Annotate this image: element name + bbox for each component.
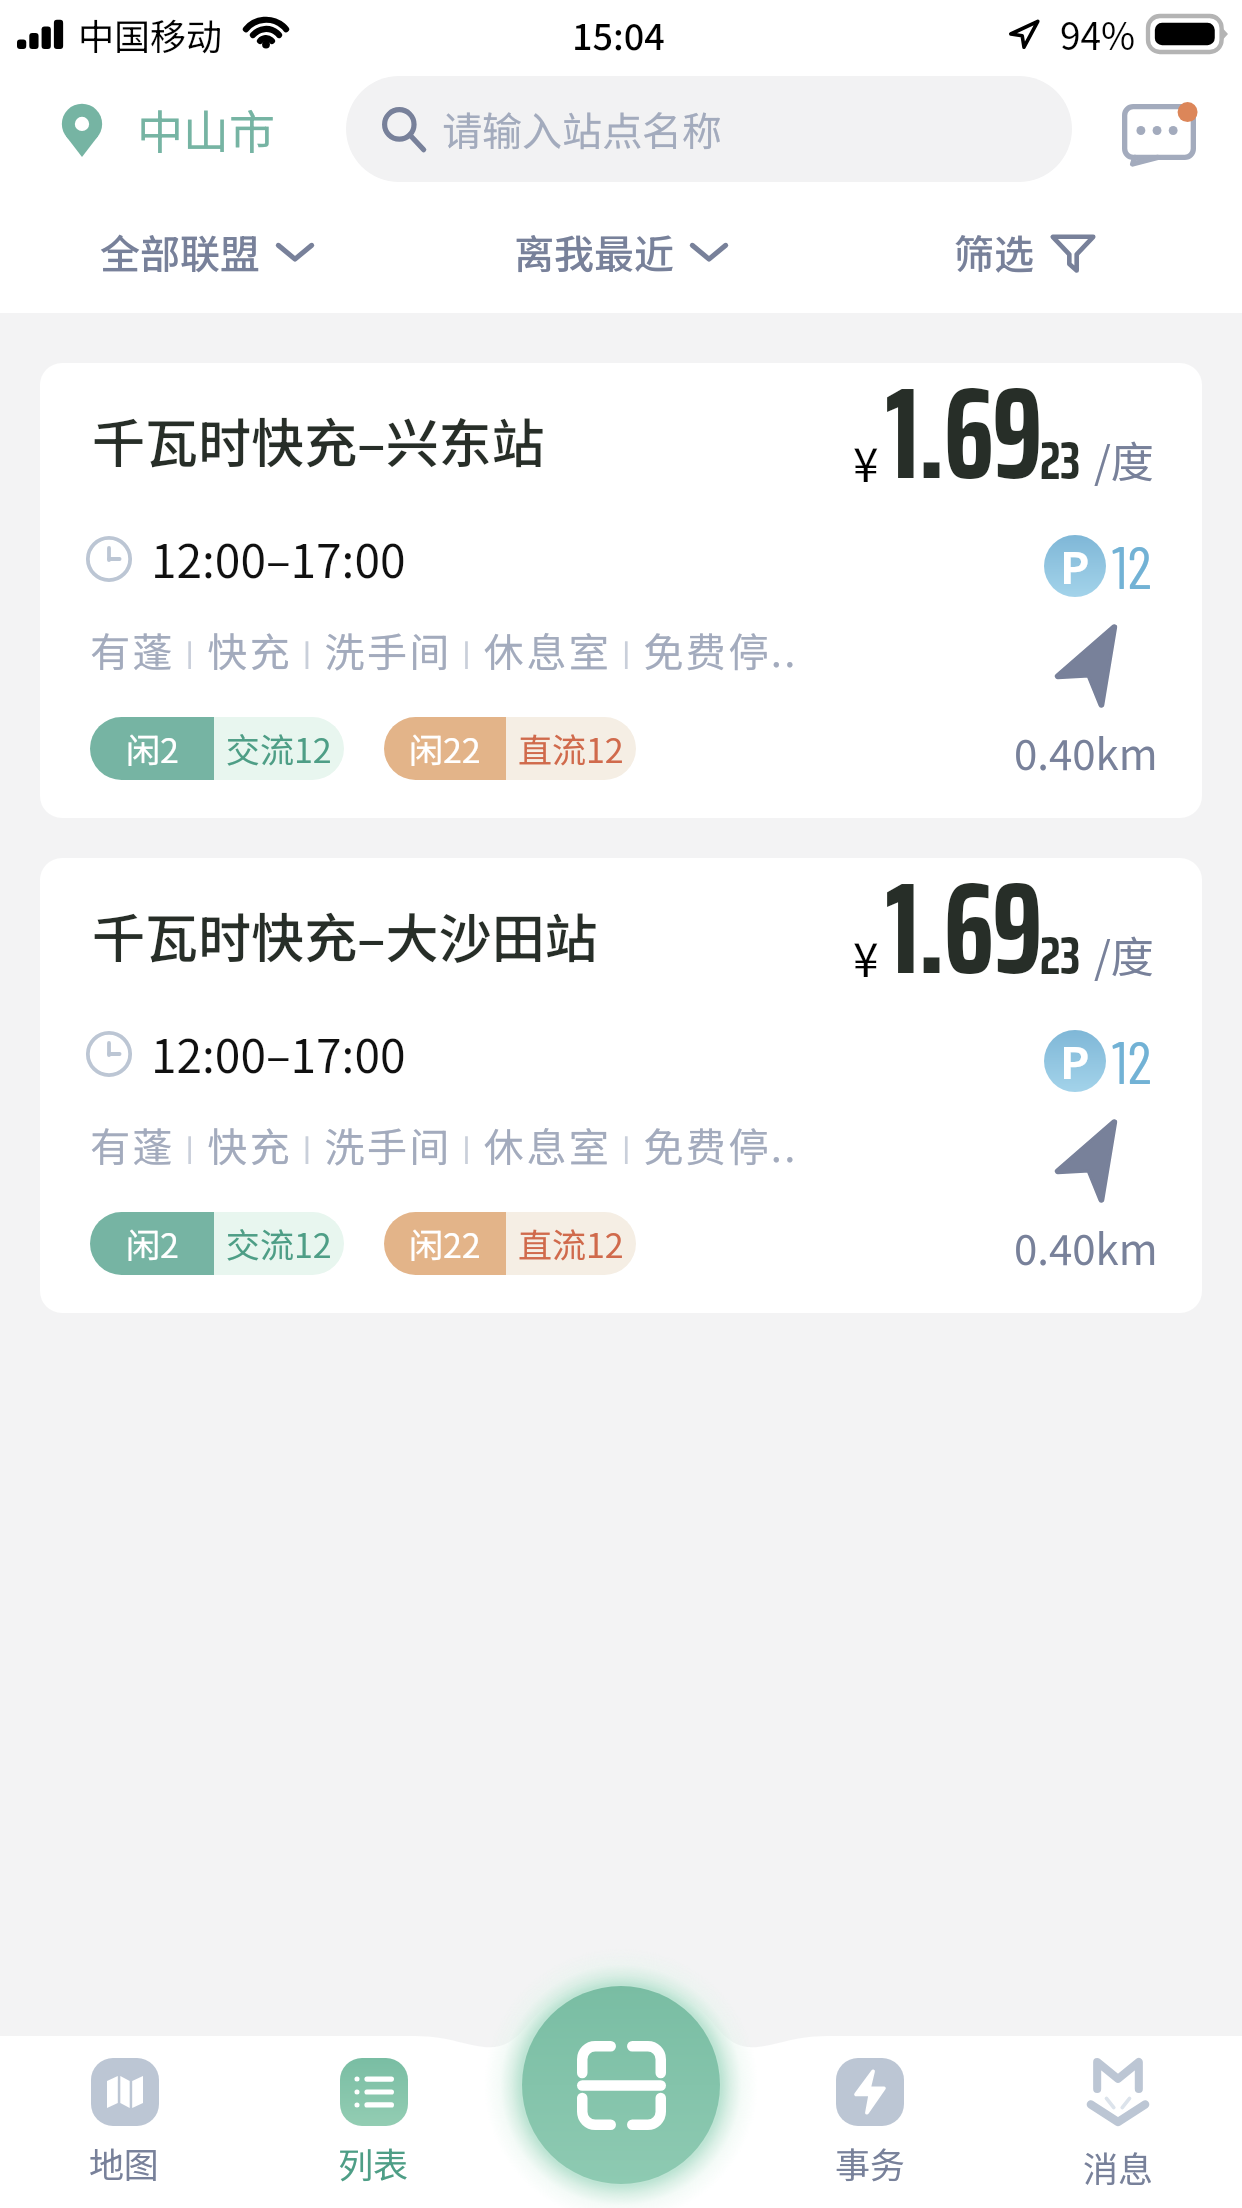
button[interactable]: Scan QR code xyxy=(522,1986,720,2184)
staticText: 交流12 xyxy=(226,1219,332,1268)
button[interactable]: 中山市 xyxy=(61,96,275,163)
staticText: 1.69 xyxy=(885,858,1041,1030)
staticText: 消息 xyxy=(1083,2141,1154,2192)
staticText: 1.69 xyxy=(885,363,1041,535)
staticText: /度 xyxy=(1094,923,1154,985)
staticText: 全部联盟 xyxy=(100,223,260,281)
staticText: 事务 xyxy=(835,2137,906,2188)
button[interactable]: Messages xyxy=(1114,89,1204,179)
staticText: 0.40km xyxy=(1014,721,1158,782)
button[interactable]: 筛选 xyxy=(828,190,1242,313)
staticText: 23 xyxy=(1040,418,1080,503)
staticText: 列表 xyxy=(338,2137,409,2188)
staticText: P xyxy=(1060,535,1090,595)
staticText: 12 xyxy=(1112,1024,1152,1096)
button[interactable]: 事务 xyxy=(746,2035,994,2208)
staticText: 直流12 xyxy=(518,1219,624,1268)
staticText: 有蓬丨快充丨洗手间丨休息室丨免费停.. xyxy=(90,1116,798,1174)
staticText: 筛选 xyxy=(954,223,1034,281)
button[interactable]: Navigate xyxy=(1014,1118,1158,1277)
staticText: 千瓦时快充–兴东站 xyxy=(92,402,545,479)
button[interactable]: Navigate xyxy=(1014,623,1158,782)
staticText: 94% xyxy=(1060,7,1136,61)
staticText: ¥ xyxy=(853,429,879,496)
button[interactable]: 千瓦时快充–兴东站 xyxy=(40,363,1202,818)
staticText: 0.40km xyxy=(1014,1216,1158,1277)
button[interactable]: 闲22 xyxy=(384,1212,636,1275)
staticText: 闲2 xyxy=(126,724,179,773)
staticText: 千瓦时快充–大沙田站 xyxy=(92,897,598,974)
button[interactable]: 闲2 xyxy=(90,717,344,780)
staticText: 离我最近 xyxy=(514,223,674,281)
staticText: 闲2 xyxy=(126,1219,179,1268)
staticText: /度 xyxy=(1094,428,1154,490)
staticText: 地图 xyxy=(89,2137,160,2188)
button[interactable]: 离我最近 xyxy=(414,190,828,313)
staticText: 15:04 xyxy=(572,8,665,60)
staticText: 有蓬丨快充丨洗手间丨休息室丨免费停.. xyxy=(90,621,798,679)
button[interactable]: 列表 xyxy=(249,2035,498,2208)
button[interactable]: 闲22 xyxy=(384,717,636,780)
staticText: 12:00–17:00 xyxy=(151,525,406,592)
staticText: 交流12 xyxy=(226,724,332,773)
button[interactable]: 全部联盟 xyxy=(0,190,414,313)
staticText: 中国移动 xyxy=(78,8,223,60)
staticText: P xyxy=(1060,1030,1090,1090)
staticText: 23 xyxy=(1040,913,1080,998)
staticText: 闲22 xyxy=(409,1219,481,1268)
staticText: 直流12 xyxy=(518,724,624,773)
button[interactable]: 消息 xyxy=(994,2035,1242,2208)
staticText: 12 xyxy=(1112,529,1152,601)
staticText: 12:00–17:00 xyxy=(151,1020,406,1087)
staticText: ¥ xyxy=(853,924,879,991)
staticText: 闲22 xyxy=(409,724,481,773)
button[interactable]: 地图 xyxy=(0,2035,249,2208)
button[interactable]: 千瓦时快充–大沙田站 xyxy=(40,858,1202,1313)
staticText: 请输入站点名称 xyxy=(442,100,722,158)
button[interactable]: 闲2 xyxy=(90,1212,344,1275)
staticText: 中山市 xyxy=(137,96,275,163)
button[interactable]: 请输入站点名称 xyxy=(346,76,1072,182)
